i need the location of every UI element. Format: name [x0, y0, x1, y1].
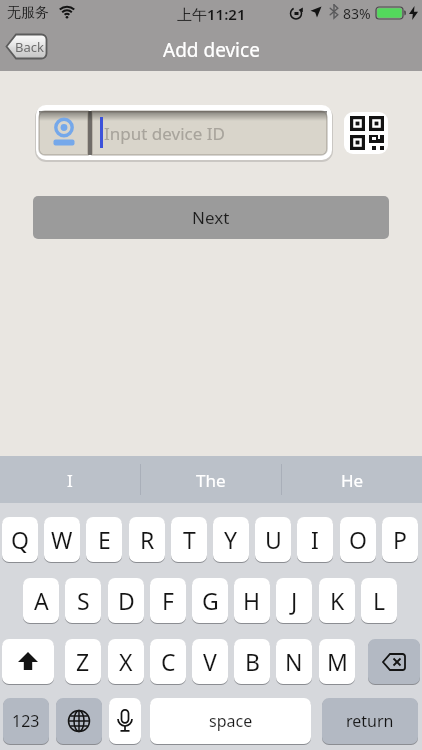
button[interactable]: V [192, 639, 228, 684]
button[interactable] [344, 112, 388, 154]
staticText: I [311, 524, 319, 555]
button[interactable]: C [150, 639, 186, 684]
button[interactable] [109, 698, 141, 744]
button[interactable]: J [276, 578, 312, 623]
button[interactable]: He [282, 468, 422, 492]
button[interactable]: K [319, 578, 355, 623]
button[interactable]: D [108, 578, 144, 623]
button[interactable]: Q [2, 517, 38, 562]
staticText: space [209, 710, 253, 732]
staticText: 上午11:21 [177, 4, 246, 24]
staticText: Q [11, 524, 29, 555]
button[interactable]: Z [65, 639, 101, 684]
button[interactable]: W [44, 517, 80, 562]
staticText: V [203, 646, 217, 677]
staticText: O [349, 524, 367, 555]
staticText: U [265, 524, 282, 555]
staticText: L [373, 585, 386, 616]
staticText: C [161, 646, 176, 677]
staticText: F [162, 585, 174, 616]
staticText: Y [224, 524, 238, 555]
button[interactable]: R [129, 517, 165, 562]
button[interactable]: H [234, 578, 270, 623]
button[interactable]: G [192, 578, 228, 623]
button[interactable]: E [86, 517, 122, 562]
staticText: E [98, 524, 111, 555]
button[interactable]: X [108, 639, 144, 684]
staticText: G [202, 585, 219, 616]
staticText: X [119, 646, 133, 677]
button[interactable]: F [150, 578, 186, 623]
staticText: 123 [12, 710, 40, 732]
staticText: D [118, 585, 135, 616]
button[interactable]: T [171, 517, 207, 562]
staticText: P [393, 524, 407, 555]
staticText: S [77, 585, 90, 616]
staticText: N [285, 646, 303, 677]
staticText: K [330, 585, 345, 616]
button[interactable]: N [276, 639, 312, 684]
button[interactable]: The [141, 468, 281, 492]
staticText: B [245, 646, 260, 677]
button[interactable]: Back [5, 33, 48, 60]
staticText: W [51, 524, 73, 555]
button[interactable]: Y [213, 517, 249, 562]
button[interactable]: A [23, 578, 59, 623]
staticText: Input device ID [104, 122, 225, 145]
button[interactable]: 123 [3, 698, 49, 744]
staticText: I [67, 469, 73, 492]
button[interactable] [368, 639, 420, 684]
staticText: return [346, 710, 394, 732]
button[interactable]: L [361, 578, 397, 623]
button[interactable]: Next [33, 196, 389, 239]
button[interactable] [2, 639, 54, 684]
button[interactable]: B [234, 639, 270, 684]
staticText: The [196, 469, 226, 492]
staticText: Back [15, 38, 44, 56]
staticText: Add device [163, 37, 260, 63]
staticText: A [34, 585, 49, 616]
staticText: J [291, 585, 298, 616]
staticText: H [243, 585, 261, 616]
staticText: He [341, 469, 364, 492]
button[interactable]: M [319, 639, 355, 684]
button[interactable]: I [297, 517, 333, 562]
staticText: M [327, 646, 348, 677]
staticText: R [140, 524, 155, 555]
staticText: 83% [343, 4, 371, 23]
button[interactable] [56, 698, 102, 744]
staticText: 无服务 [7, 4, 49, 22]
button[interactable]: return [322, 698, 418, 744]
staticText: Z [76, 646, 90, 677]
staticText: T [183, 524, 196, 555]
button[interactable]: I [0, 468, 140, 492]
button[interactable]: P [382, 517, 418, 562]
button[interactable]: S [65, 578, 101, 623]
button[interactable]: U [255, 517, 291, 562]
button[interactable]: space [150, 698, 311, 744]
staticText: Next [192, 206, 230, 229]
button[interactable]: O [340, 517, 376, 562]
